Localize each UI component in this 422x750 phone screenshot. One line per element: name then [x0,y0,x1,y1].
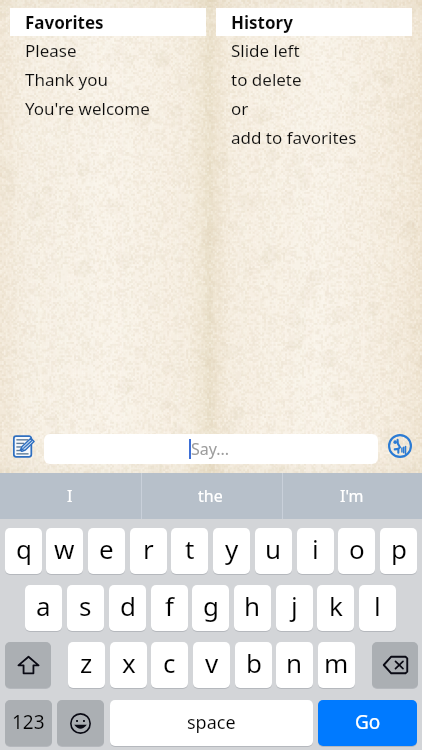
button[interactable]: r [130,528,167,574]
staticText: 123 [12,709,45,735]
button[interactable]: z [68,642,105,688]
staticText: Please [25,39,77,62]
staticText: o [349,531,365,566]
button[interactable]: Please [10,36,206,65]
button[interactable]: I'm [281,473,422,519]
staticText: r [143,531,154,566]
button[interactable]: You're welcome [10,94,206,123]
staticText: space [187,710,236,735]
staticText: m [324,645,349,680]
staticText: d [120,588,136,623]
button[interactable]: j [276,585,313,631]
staticText: e [99,531,114,566]
staticText: a [36,588,51,623]
button[interactable]: Shift [5,642,51,688]
button[interactable]: k [317,585,354,631]
button[interactable]: Emoji [57,700,104,746]
staticText: h [244,588,261,623]
button[interactable]: Speak [388,434,412,458]
button[interactable]: i [297,528,334,574]
button[interactable]: b [235,642,272,688]
staticText: x [122,645,136,680]
staticText: u [265,531,282,566]
button[interactable]: n [276,642,313,688]
button[interactable]: Favorites [10,8,206,36]
staticText: p [391,531,407,566]
button[interactable]: a [25,585,62,631]
staticText: c [163,645,176,680]
button[interactable]: e [88,528,125,574]
button[interactable]: g [192,585,229,631]
button[interactable]: l [359,585,396,631]
staticText: I'm [340,485,364,507]
staticText: You're welcome [25,97,150,120]
button[interactable]: Backspace [372,642,418,688]
button[interactable]: the [140,473,281,519]
button[interactable]: y [213,528,250,574]
staticText: t [185,531,195,566]
staticText: j [291,588,298,623]
button[interactable]: f [151,585,188,631]
button[interactable]: u [255,528,292,574]
button[interactable]: New note [12,435,35,461]
button[interactable]: d [109,585,146,631]
button[interactable]: m [318,642,355,688]
staticText: Favorites [25,11,104,34]
button[interactable]: 123 [5,700,52,746]
button[interactable]: to delete [216,65,412,94]
staticText: Go [355,709,381,735]
staticText: l [374,588,381,623]
button[interactable]: s [67,585,104,631]
staticText: Say... [191,438,230,460]
button[interactable]: p [380,528,417,574]
staticText: q [16,531,32,566]
button[interactable]: h [234,585,271,631]
staticText: k [329,588,343,623]
staticText: add to favorites [231,126,357,149]
staticText: z [80,645,93,680]
staticText: Thank you [25,68,108,91]
button[interactable]: History [216,8,412,36]
button[interactable]: Go [318,700,417,746]
button[interactable]: x [110,642,147,688]
button[interactable]: w [46,528,83,574]
button[interactable]: I [0,473,140,519]
button[interactable]: q [5,528,42,574]
button[interactable]: Say... [44,434,378,464]
button[interactable]: or [216,94,412,123]
button[interactable]: Thank you [10,65,206,94]
staticText: s [79,588,92,623]
staticText: or [231,97,249,120]
staticText: y [225,531,239,566]
staticText: History [231,11,293,34]
staticText: f [165,588,174,623]
staticText: i [312,531,319,566]
staticText: the [198,485,223,507]
staticText: w [54,531,75,566]
staticText: n [286,645,303,680]
staticText: g [203,588,219,623]
staticText: Slide left [231,39,300,62]
button[interactable]: o [338,528,375,574]
staticText: v [205,645,219,680]
button[interactable]: space [110,700,313,746]
staticText: b [246,645,262,680]
button[interactable]: add to favorites [216,123,412,152]
staticText: I [67,485,73,507]
button[interactable]: t [171,528,208,574]
button[interactable]: c [151,642,188,688]
button[interactable]: v [193,642,230,688]
staticText: to delete [231,68,302,91]
button[interactable]: Slide left [216,36,412,65]
